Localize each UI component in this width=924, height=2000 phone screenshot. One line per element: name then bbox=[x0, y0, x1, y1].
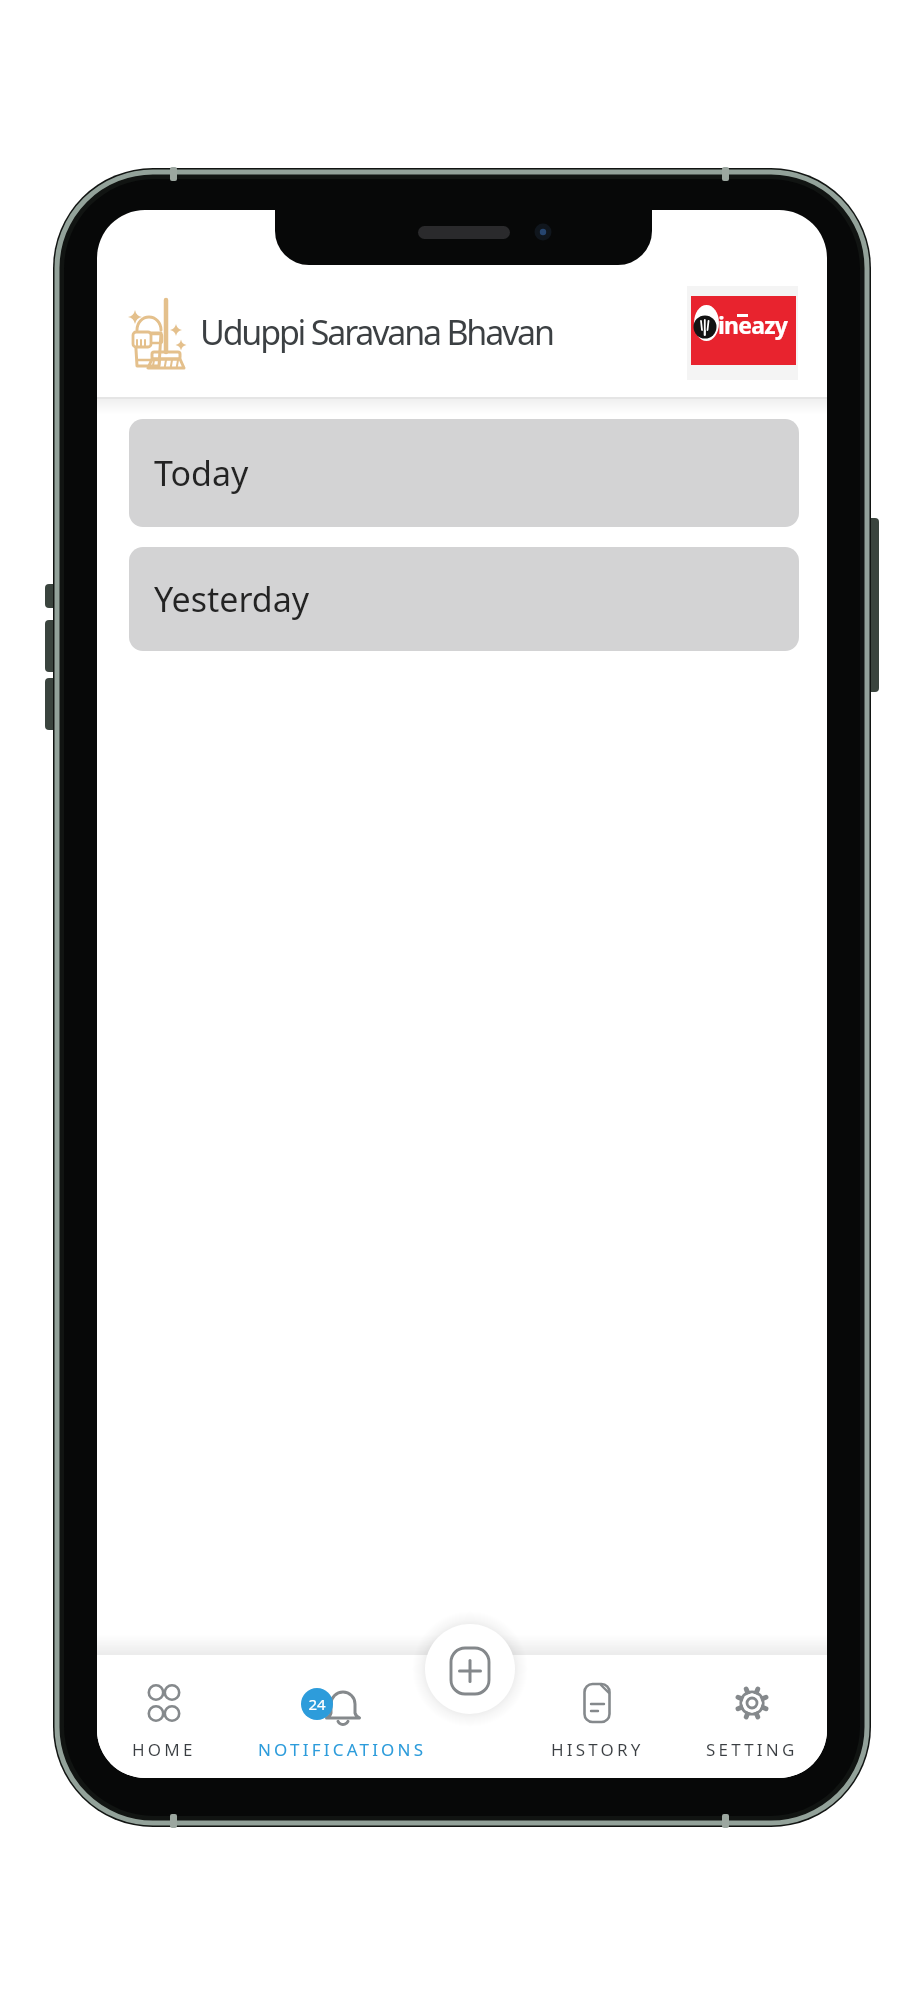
button[interactable]: Yesterday bbox=[129, 547, 799, 651]
staticText: NOTIFICATIONS bbox=[258, 1738, 427, 1761]
staticText: ineazy bbox=[718, 309, 788, 340]
button[interactable] bbox=[425, 1624, 515, 1714]
staticText: HISTORY bbox=[551, 1738, 644, 1761]
staticText: Uduppi Saravana Bhavan bbox=[200, 309, 553, 355]
staticText: HOME bbox=[132, 1738, 196, 1761]
staticText: SETTING bbox=[706, 1738, 798, 1761]
button[interactable]: HOME bbox=[97, 1678, 239, 1773]
button[interactable]: HISTORY bbox=[522, 1678, 672, 1773]
staticText: Today bbox=[154, 450, 249, 496]
button[interactable]: 24 bbox=[252, 1678, 432, 1773]
staticText: Yesterday bbox=[154, 576, 310, 622]
staticText: 24 bbox=[305, 1694, 329, 1714]
button[interactable]: SETTING bbox=[677, 1678, 827, 1773]
button[interactable]: Today bbox=[129, 419, 799, 527]
